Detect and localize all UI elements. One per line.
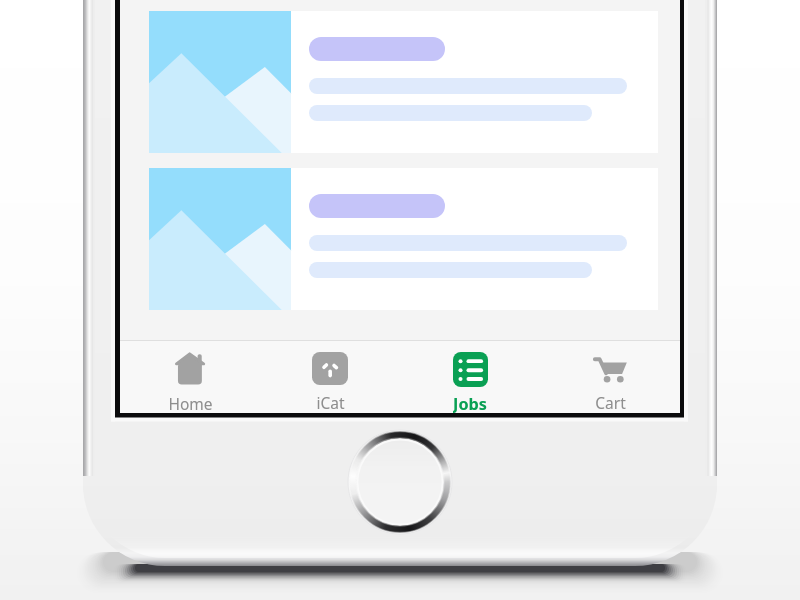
button[interactable]: Jobs (400, 341, 540, 413)
staticText: Jobs (453, 393, 487, 413)
button[interactable] (149, 11, 658, 153)
staticText: Cart (595, 392, 626, 413)
button[interactable]: Home (120, 341, 260, 413)
button[interactable] (149, 168, 658, 310)
staticText: iCat (316, 392, 345, 413)
staticText: Home (168, 393, 213, 413)
button[interactable]: iCat (260, 341, 400, 413)
button[interactable]: Cart (540, 341, 680, 413)
